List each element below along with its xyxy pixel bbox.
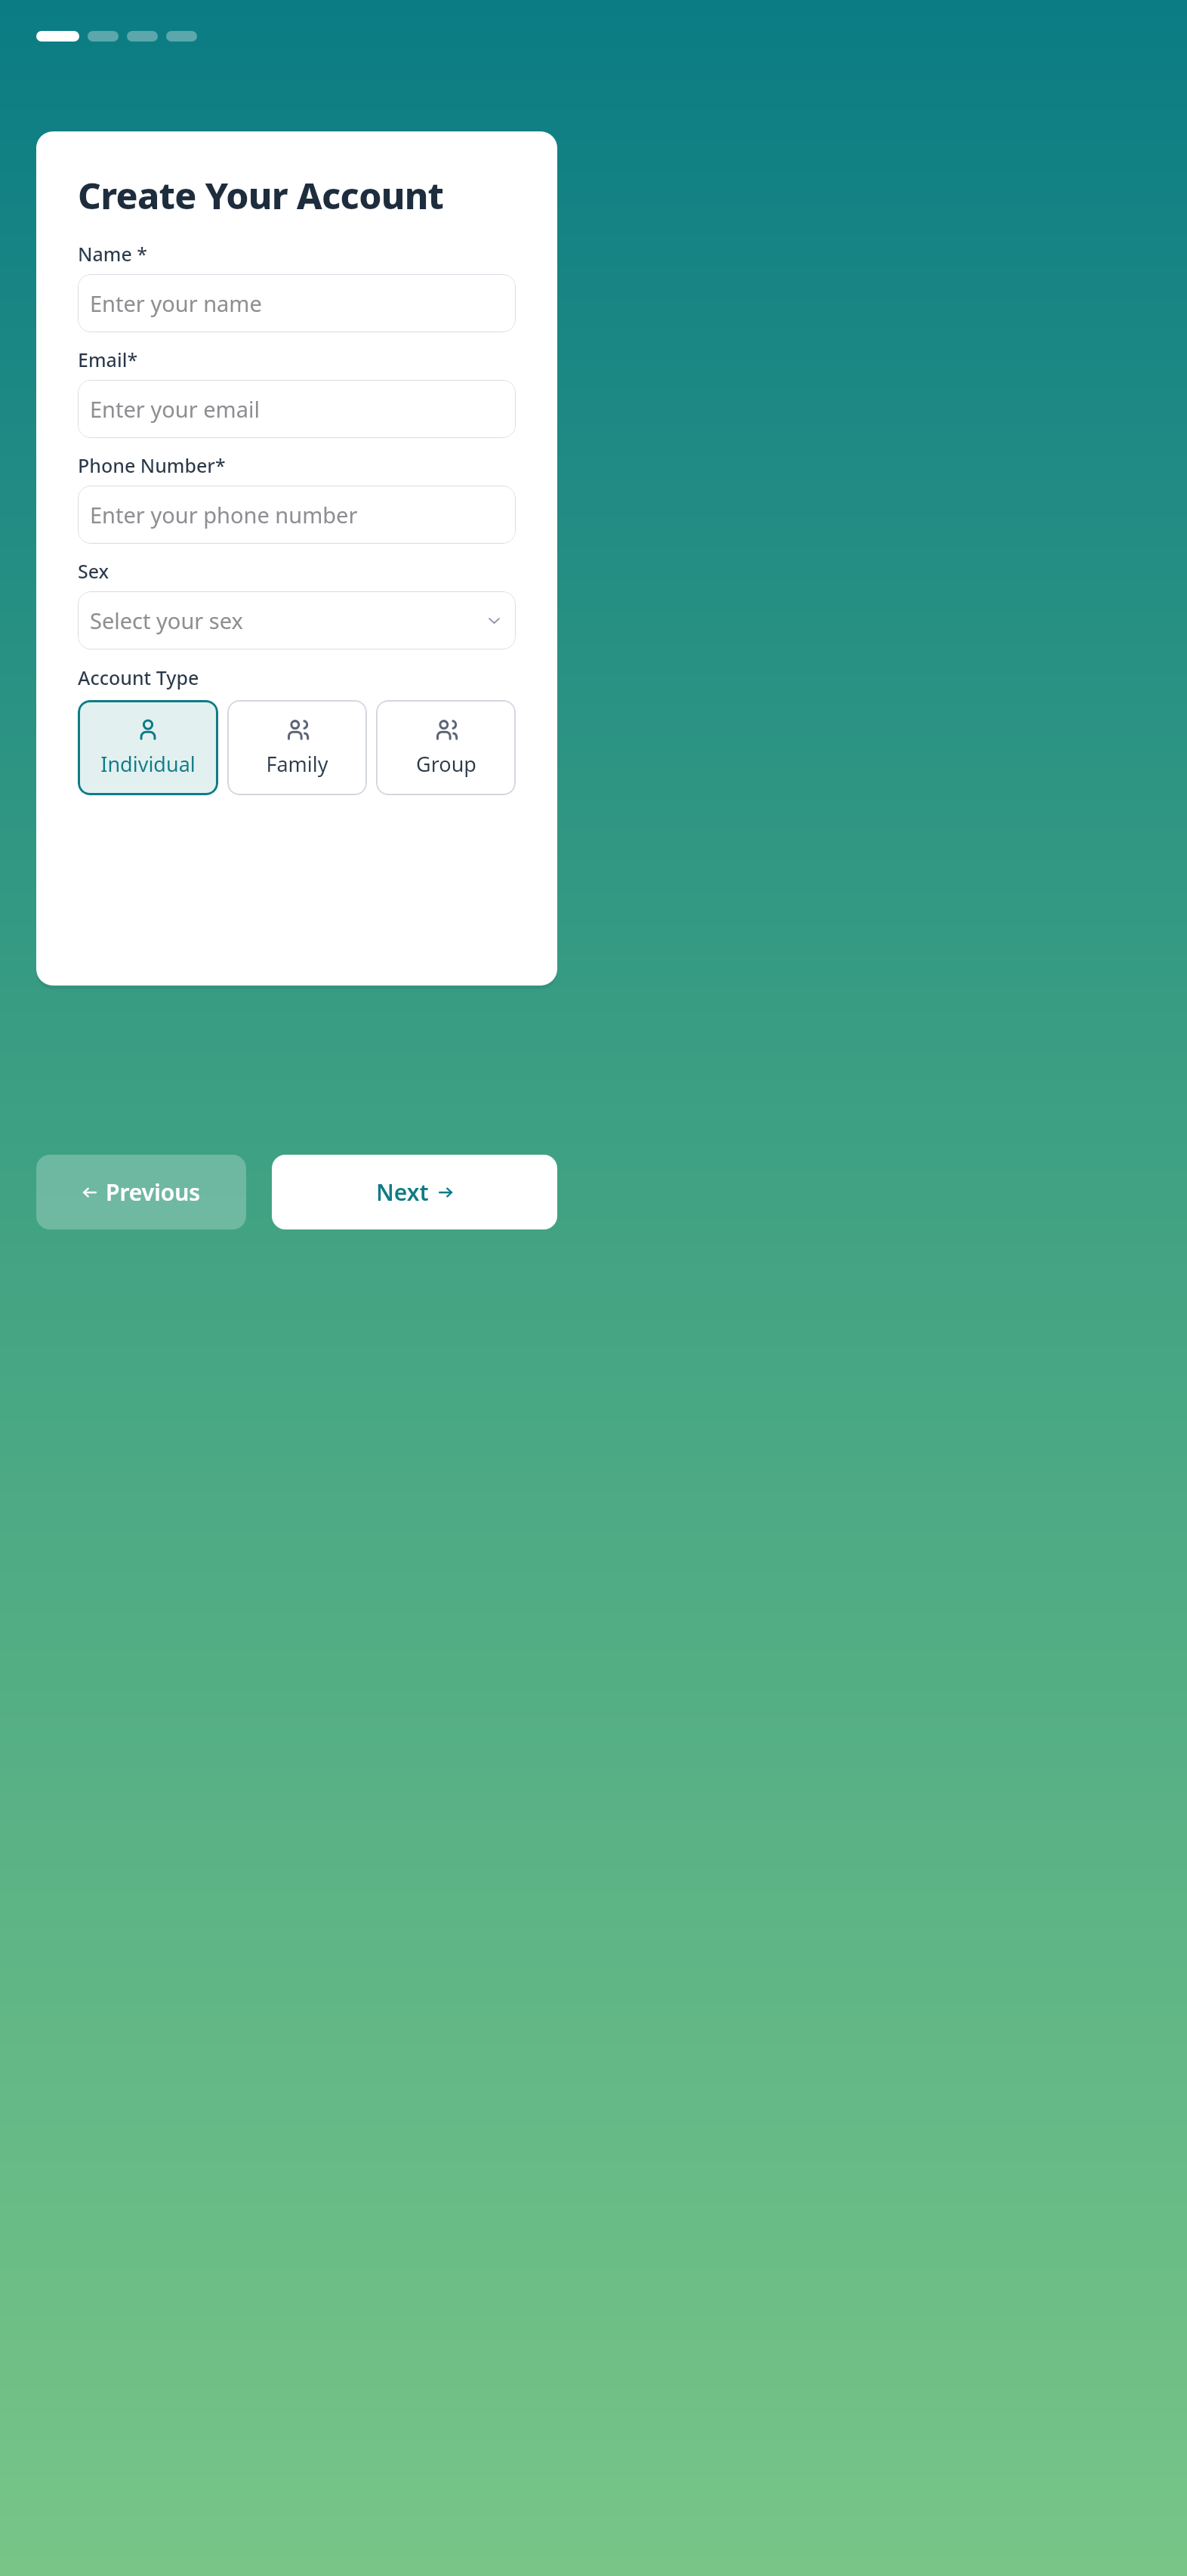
staticText: Account Type [78,665,199,690]
staticText: Next [376,1177,429,1208]
staticText: Family [266,750,328,778]
staticText: Create Your Account [78,171,444,220]
staticText: Individual [100,750,196,778]
staticText: Email* [78,347,138,372]
staticText: Sex [78,558,109,584]
button[interactable]: Enter your name [78,274,516,332]
staticText: Phone Number* [78,452,226,478]
button[interactable]: Enter your phone number [78,486,516,544]
staticText: Group [416,750,476,778]
button[interactable]: Group [376,700,516,795]
other: Previous [82,1184,98,1201]
button[interactable]: Individual [78,700,218,795]
button[interactable]: Previous [36,1155,246,1229]
staticText: Enter your phone number [90,500,358,529]
staticText: Enter your email [90,394,260,424]
other: Next [437,1184,454,1201]
staticText: Previous [106,1177,201,1208]
button[interactable]: Select your sex [78,591,516,649]
staticText: Select your sex [90,606,243,635]
button[interactable] [36,31,79,42]
button[interactable] [127,31,158,42]
button[interactable]: Next [272,1155,557,1229]
button[interactable]: Enter your email [78,380,516,438]
button[interactable] [88,31,119,42]
staticText: Name * [78,241,147,267]
button[interactable] [166,31,197,42]
button[interactable]: Family [227,700,367,795]
staticText: Enter your name [90,288,262,318]
